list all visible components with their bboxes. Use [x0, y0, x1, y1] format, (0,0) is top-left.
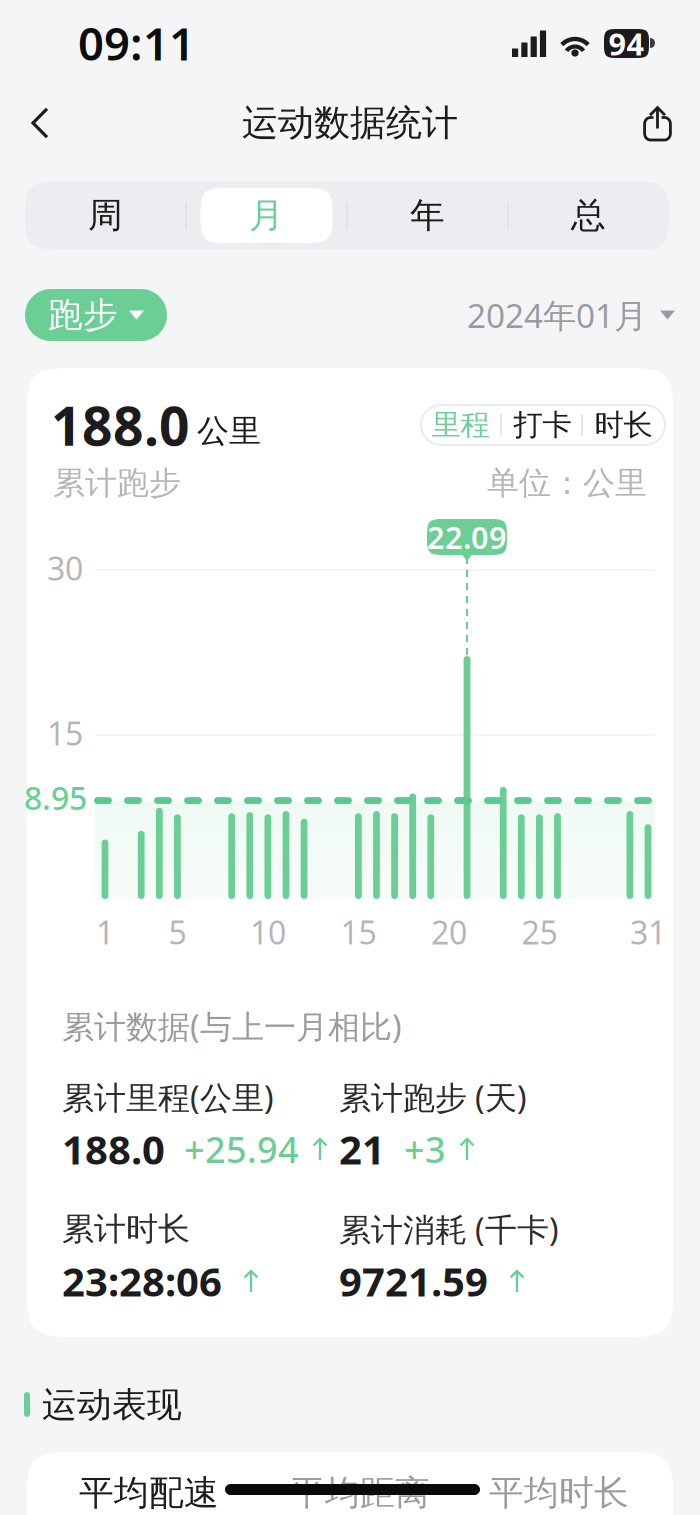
staticText: 31	[630, 911, 666, 953]
staticText: 累计时长	[62, 1209, 190, 1249]
staticText: 跑步	[48, 294, 118, 336]
staticText: 年	[410, 194, 445, 237]
staticText: 15	[340, 911, 376, 953]
staticText: 188.0	[62, 1122, 165, 1175]
staticText: 公里	[197, 411, 261, 451]
staticText: 里程	[431, 407, 489, 443]
staticText: 运动数据统计	[242, 101, 458, 145]
staticText: 9721.59	[339, 1254, 488, 1307]
staticText: 累计消耗 (千卡)	[339, 1208, 559, 1250]
staticText: 累计数据(与上一月相比)	[62, 1005, 402, 1047]
staticText: 单位：公里	[487, 463, 647, 503]
button[interactable]: 跑步	[25, 289, 167, 341]
staticText: 2024年01月	[467, 293, 647, 337]
button[interactable]: 打卡	[503, 405, 582, 445]
staticText: 累计里程(公里)	[62, 1076, 274, 1118]
staticText: 累计跑步	[53, 463, 181, 503]
staticText: 周	[88, 194, 123, 237]
staticText: 5	[168, 911, 186, 953]
staticText: 平均配速	[79, 1472, 219, 1514]
button[interactable]: 2024年01月	[425, 289, 675, 341]
staticText: 23:28:06	[62, 1254, 222, 1307]
staticText: 94	[608, 23, 644, 64]
staticText: 平均时长	[489, 1472, 629, 1514]
staticText: 188.0	[51, 390, 190, 460]
button[interactable]: Share	[630, 86, 686, 160]
staticText: 平均距离	[290, 1472, 430, 1514]
staticText: 09:11	[78, 13, 195, 73]
staticText: 25	[521, 911, 557, 953]
staticText: 月	[249, 194, 284, 237]
button[interactable]: 时长	[584, 405, 663, 445]
button[interactable]: 里程	[421, 405, 500, 445]
staticText: 15	[47, 712, 83, 754]
staticText: 打卡	[513, 407, 571, 443]
staticText: 8.95	[24, 776, 87, 819]
staticText: +25.94	[184, 1125, 299, 1173]
button[interactable]: 平均配速	[79, 1468, 269, 1515]
button[interactable]: 周	[25, 181, 186, 250]
button[interactable]: 年	[347, 181, 508, 250]
staticText: 10	[250, 911, 286, 953]
button[interactable]: 平均距离	[265, 1468, 455, 1515]
staticText: 21	[339, 1122, 385, 1175]
staticText: 20	[431, 911, 467, 953]
button[interactable]: 总	[508, 181, 669, 250]
staticText: 总	[571, 194, 606, 237]
button[interactable]: 平均时长	[439, 1468, 629, 1515]
staticText: 时长	[594, 407, 652, 443]
staticText: 运动表现	[42, 1384, 182, 1426]
button[interactable]: Back	[14, 86, 70, 160]
staticText: 22.09	[427, 517, 507, 557]
button[interactable]: 月	[186, 181, 347, 250]
staticText: 30	[47, 547, 83, 589]
staticText: +3	[404, 1125, 446, 1173]
staticText: 1	[96, 911, 114, 953]
staticText: 累计跑步 (天)	[339, 1076, 527, 1118]
